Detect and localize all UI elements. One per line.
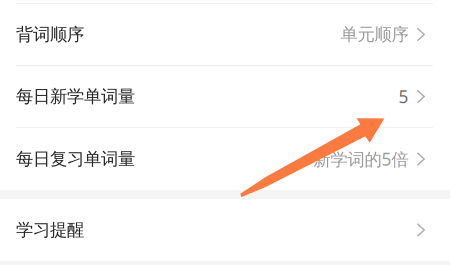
staticText: 单元顺序 bbox=[341, 24, 409, 45]
button[interactable]: 每日复习单词量 bbox=[0, 128, 450, 190]
staticText: 每日新学单词量 bbox=[16, 86, 135, 107]
button[interactable]: 背词顺序 bbox=[0, 4, 450, 66]
staticText: 背词顺序 bbox=[16, 24, 84, 45]
staticText: 新学词的5倍 bbox=[314, 147, 409, 170]
staticText: 每日复习单词量 bbox=[16, 148, 135, 170]
button[interactable]: 每日新学单词量 bbox=[0, 66, 450, 128]
staticText: 5 bbox=[399, 85, 409, 108]
staticText: 学习提醒 bbox=[16, 219, 84, 241]
button[interactable]: 学习提醒 bbox=[0, 199, 450, 261]
